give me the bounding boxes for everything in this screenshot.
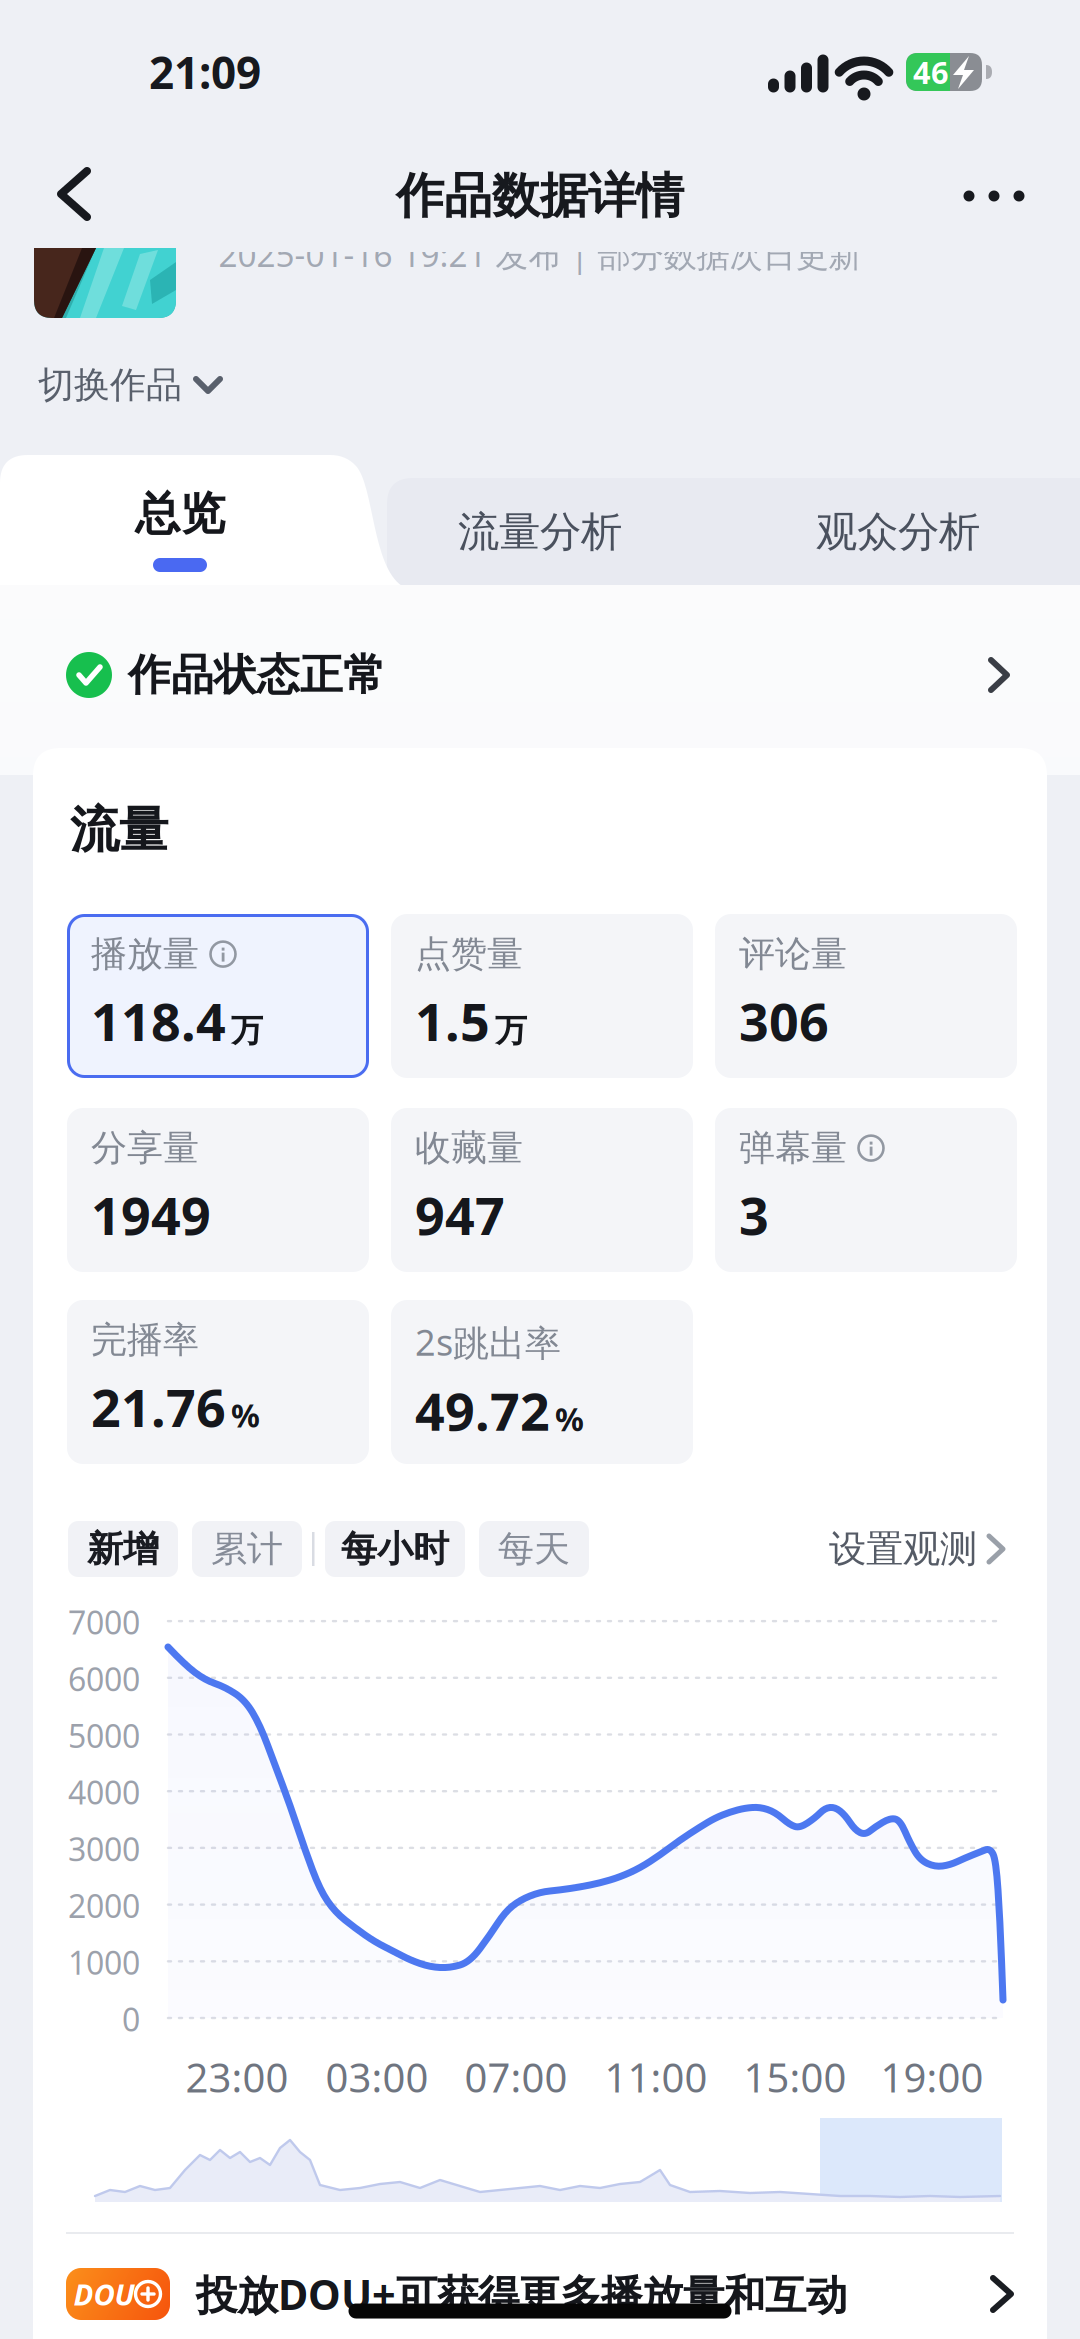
button[interactable]: 每天 <box>479 1521 589 1577</box>
staticText: 流量 <box>70 800 168 860</box>
staticText: 3 <box>739 1180 769 1249</box>
button[interactable]: 分享量 <box>67 1108 369 1272</box>
staticText: 947 <box>415 1180 505 1249</box>
staticText: 3000 <box>68 1828 140 1870</box>
button[interactable]: 总览 <box>70 459 290 569</box>
staticText: 2025-01-16 19:21 发布 | 部分数据次日更新 <box>218 232 861 276</box>
staticText: 11:00 <box>604 2050 707 2103</box>
staticText: 23:00 <box>185 2050 288 2103</box>
staticText: 07:00 <box>464 2050 567 2103</box>
staticText: 万 <box>495 1011 527 1050</box>
staticText: 118.4 <box>91 986 226 1055</box>
button[interactable]: 弹幕量 <box>715 1108 1017 1272</box>
staticText: 弹幕量 <box>739 1126 847 1170</box>
staticText: 观众分析 <box>816 507 980 557</box>
staticText: 收藏量 <box>415 1126 523 1170</box>
staticText: 完播率 <box>91 1318 199 1362</box>
button[interactable]: 每小时 <box>325 1521 465 1577</box>
staticText: 2s跳出率 <box>415 1318 561 1366</box>
button[interactable]: Back <box>42 162 106 226</box>
staticText: 万 <box>231 1011 263 1050</box>
staticText: 4000 <box>68 1771 140 1813</box>
staticText: 每天 <box>498 1527 570 1571</box>
staticText: 总览 <box>135 486 225 542</box>
staticText: % <box>555 1398 584 1440</box>
staticText: 评论量 <box>739 932 847 976</box>
staticText: 流量分析 <box>458 507 622 557</box>
staticText: 新增 <box>87 1527 159 1571</box>
staticText: 2000 <box>68 1884 140 1927</box>
button[interactable]: 作品状态正常 <box>66 649 1014 701</box>
staticText: % <box>231 1394 260 1436</box>
button[interactable]: 累计 <box>192 1521 302 1577</box>
staticText: 7000 <box>68 1601 140 1643</box>
staticText: 1000 <box>68 1941 140 1984</box>
staticText: 6000 <box>68 1658 140 1700</box>
button[interactable]: DOU <box>66 2264 1014 2324</box>
staticText: 15:00 <box>743 2050 846 2103</box>
button[interactable]: 切换作品 <box>38 357 222 413</box>
staticText: 作品状态正常 <box>128 649 386 701</box>
button[interactable]: 观众分析 <box>753 478 1043 586</box>
staticText: 切换作品 <box>38 363 182 407</box>
staticText: 21.76 <box>91 1372 226 1441</box>
staticText: 点赞量 <box>415 932 523 976</box>
staticText: 分享量 <box>91 1126 199 1170</box>
staticText: 306 <box>739 986 829 1055</box>
button[interactable]: 收藏量 <box>391 1108 693 1272</box>
button[interactable]: 完播率 <box>67 1300 369 1464</box>
staticText: 46 <box>913 52 949 92</box>
button[interactable]: 播放量 <box>67 914 369 1078</box>
button[interactable]: 评论量 <box>715 914 1017 1078</box>
staticText: 03:00 <box>325 2050 428 2103</box>
button[interactable]: 流量分析 <box>395 478 685 586</box>
staticText: 作品数据详情 <box>396 166 684 225</box>
button[interactable]: 2s跳出率 <box>391 1300 693 1464</box>
staticText: 49.72 <box>415 1376 550 1445</box>
button[interactable]: More <box>959 174 1029 218</box>
staticText: 1949 <box>91 1180 211 1249</box>
button[interactable]: 设置观测 <box>829 1521 1007 1577</box>
staticText: 1.5 <box>415 986 490 1055</box>
staticText: 19:00 <box>880 2050 983 2103</box>
button[interactable]: 新增 <box>68 1521 178 1577</box>
staticText: 21:09 <box>149 43 261 101</box>
staticText: 5000 <box>68 1714 140 1757</box>
staticText: 每小时 <box>341 1527 449 1571</box>
staticText: 播放量 <box>91 932 199 976</box>
button[interactable]: 点赞量 <box>391 914 693 1078</box>
staticText: 累计 <box>211 1527 283 1571</box>
staticText: 设置观测 <box>829 1526 977 1572</box>
staticText: 0 <box>122 1998 140 2040</box>
staticText: 投放DOU+可获得更多播放量和互动 <box>196 2267 847 2321</box>
staticText: DOU <box>73 2274 134 2313</box>
